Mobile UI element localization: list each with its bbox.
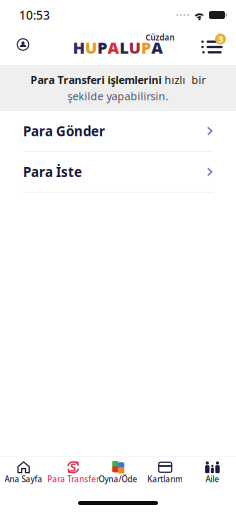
staticText: Cüzdan <box>145 32 174 43</box>
staticText: U <box>129 37 141 58</box>
button[interactable]: Para İste <box>0 152 236 192</box>
staticText: Para Transfer <box>47 474 99 484</box>
staticText: L <box>120 37 129 58</box>
staticText: H <box>73 37 85 58</box>
staticText: S <box>70 460 76 474</box>
staticText: Para İste <box>23 163 82 181</box>
button[interactable]: Ana Sayfa <box>0 458 47 488</box>
staticText: Ana Sayfa <box>5 474 43 484</box>
staticText: şekilde yapabilirsin. <box>67 89 168 103</box>
staticText: A <box>107 37 119 58</box>
staticText: U <box>85 37 97 58</box>
button[interactable]: Para Gönder <box>0 111 236 151</box>
staticText: P <box>141 37 151 58</box>
staticText: Para Transferi işlemlerini hızlı bir <box>30 73 205 87</box>
staticText: Para Gönder <box>23 122 105 140</box>
staticText: 10:53 <box>19 7 50 23</box>
button[interactable]: Oyna/Öde <box>94 458 142 488</box>
staticText: P <box>97 37 107 58</box>
staticText: 3 <box>218 33 223 45</box>
button[interactable]: Menü <box>198 31 228 57</box>
staticText: A <box>151 37 163 58</box>
staticText: Aile <box>205 474 219 484</box>
button[interactable]: S <box>47 458 94 488</box>
button[interactable]: Kartlarım <box>142 458 189 488</box>
button[interactable]: Aile <box>189 458 236 488</box>
staticText: Kartlarım <box>147 474 183 484</box>
button[interactable]: Profil <box>8 31 38 57</box>
staticText: Oyna/Öde <box>98 474 137 484</box>
